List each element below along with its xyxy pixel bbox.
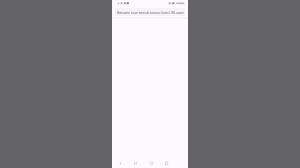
staticText: Введите поисковый запрос (или URL адрес) xyxy=(117,10,184,14)
button[interactable]: Back xyxy=(116,152,124,168)
button[interactable]: Pause xyxy=(131,152,139,168)
button[interactable]: Recent apps xyxy=(162,152,170,168)
button[interactable]: Home xyxy=(147,152,155,168)
button[interactable]: Введите поисковый запрос (или URL адрес) xyxy=(115,8,185,16)
